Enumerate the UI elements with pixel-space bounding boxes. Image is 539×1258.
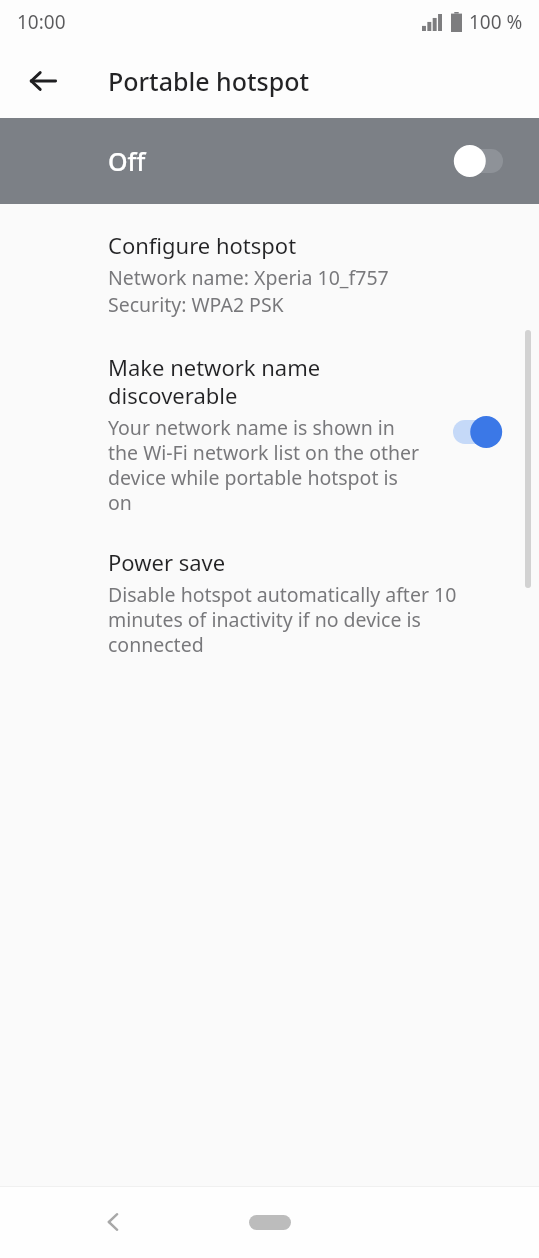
staticText: Power save [108,547,226,577]
staticText: Make network name discoverable [108,352,421,410]
staticText: Portable hotspot [108,64,310,98]
staticText: 10:00 [17,9,66,35]
staticText: Your network name is shown in the Wi-Fi … [108,414,421,515]
staticText: Off [108,144,146,178]
button[interactable]: Back [86,1195,140,1249]
staticText: Configure hotspot [108,230,297,260]
button[interactable]: Toggle off [441,144,503,178]
staticText: Network name: Xperia 10_f757 [108,264,389,291]
button[interactable]: Back [18,56,68,106]
button[interactable]: Home [238,1205,302,1239]
button[interactable]: Configure hotspot [0,226,539,322]
button[interactable]: Toggle on [453,415,515,449]
staticText: 100 % [469,9,523,35]
button[interactable]: Power save [0,547,539,657]
button[interactable]: Off [0,118,539,204]
staticText: Security: WPA2 PSK [108,291,284,318]
button[interactable]: Make network name discoverable [0,352,539,515]
staticText: Disable hotspot automatically after 10 m… [108,581,479,657]
